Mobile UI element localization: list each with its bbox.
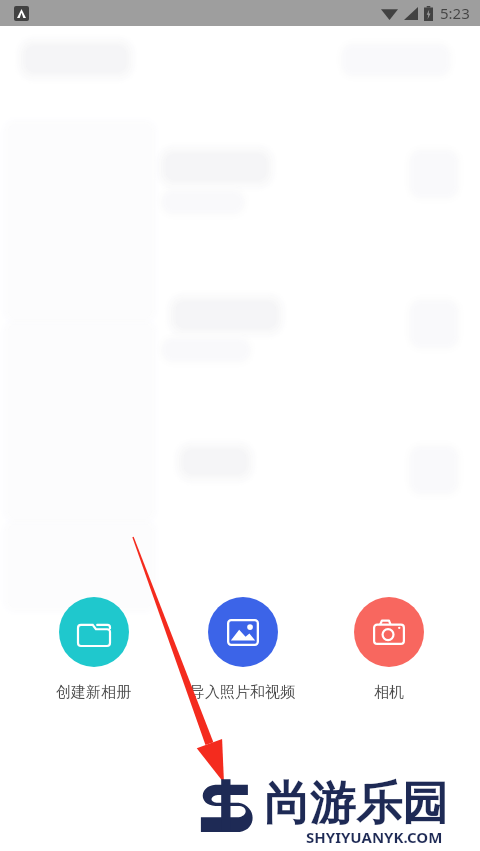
staticText: SHYIYUANYK.COM bbox=[306, 827, 443, 847]
staticText: 5:23 bbox=[440, 3, 470, 23]
staticText: 相机 bbox=[374, 683, 404, 702]
button[interactable]: 相机 bbox=[354, 597, 424, 702]
staticText: 尚游乐园 bbox=[264, 775, 448, 833]
button[interactable]: 创建新相册 bbox=[56, 597, 131, 702]
staticText: 创建新相册 bbox=[56, 683, 131, 702]
staticText: 导入照片和视频 bbox=[190, 683, 295, 702]
button[interactable]: 导入照片和视频 bbox=[190, 597, 295, 702]
